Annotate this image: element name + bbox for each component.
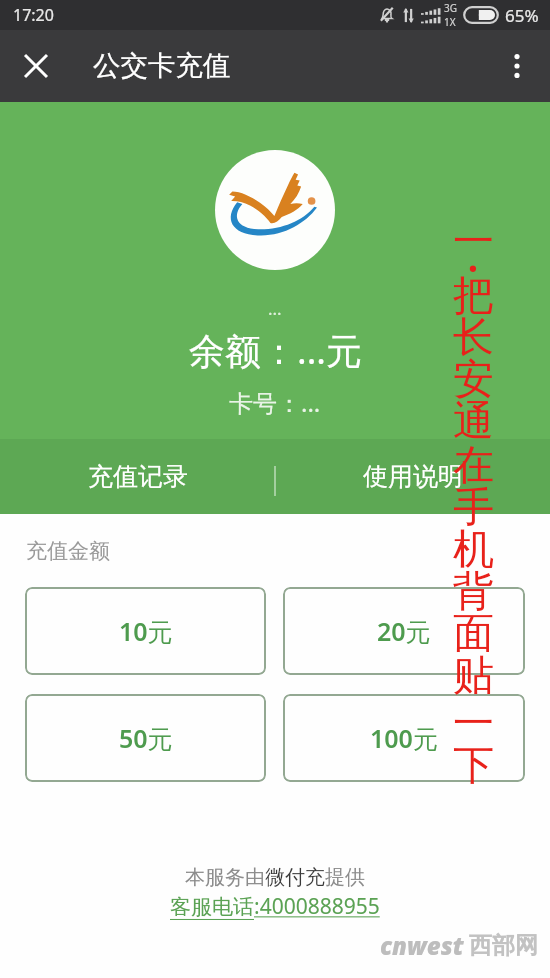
staticText: 机 bbox=[453, 524, 494, 572]
button[interactable]: 10元 bbox=[25, 587, 266, 675]
staticText: 安 bbox=[453, 354, 494, 402]
staticText: 65% bbox=[505, 4, 539, 27]
staticText: 一 bbox=[453, 698, 494, 746]
staticText: 100元 bbox=[370, 721, 438, 755]
staticText: . bbox=[467, 228, 479, 276]
button[interactable]: Close bbox=[13, 43, 59, 89]
button[interactable]: 充值记录 bbox=[0, 439, 275, 514]
button[interactable]: 客服电话:4000888955 bbox=[0, 892, 550, 921]
staticText: 客服电话:4000888955 bbox=[170, 892, 380, 921]
staticText: 20元 bbox=[377, 614, 431, 648]
staticText: 3G bbox=[444, 1, 457, 15]
staticText: 本服务由 bbox=[185, 865, 265, 890]
staticText: 充值金额 bbox=[26, 538, 110, 564]
staticText: cnwest bbox=[380, 929, 464, 962]
staticText: 通 bbox=[453, 396, 494, 444]
staticText: 手 bbox=[453, 482, 494, 530]
button[interactable]: More options bbox=[494, 43, 540, 89]
staticText: 充值记录 bbox=[88, 461, 188, 492]
staticText: 西部网 bbox=[469, 931, 538, 960]
staticText: 长 bbox=[453, 312, 494, 360]
staticText: 余额：...元 bbox=[189, 326, 362, 375]
staticText: 公交卡充值 bbox=[93, 49, 231, 84]
staticText: 背 bbox=[453, 566, 494, 614]
staticText: 微付充 bbox=[265, 865, 325, 890]
staticText: 提供 bbox=[325, 865, 365, 890]
staticText: 卡号：... bbox=[229, 386, 321, 419]
button[interactable]: 50元 bbox=[25, 694, 266, 782]
staticText: 1X bbox=[444, 15, 456, 29]
button[interactable]: 20元 bbox=[283, 587, 525, 675]
staticText: 把 bbox=[453, 270, 494, 318]
staticText: 贴 bbox=[453, 650, 494, 698]
staticText: 在 bbox=[453, 440, 494, 488]
staticText: 10元 bbox=[119, 614, 173, 648]
staticText: 面 bbox=[453, 608, 494, 656]
staticText: 下 bbox=[453, 740, 494, 788]
button[interactable]: 使用说明 bbox=[275, 439, 550, 514]
button[interactable]: 100元 bbox=[283, 694, 525, 782]
staticText: 使用说明 bbox=[363, 461, 463, 492]
staticText: 50元 bbox=[119, 721, 173, 755]
staticText: 17:20 bbox=[13, 4, 54, 26]
staticText: 一 bbox=[453, 216, 494, 264]
staticText: ... bbox=[268, 297, 282, 320]
